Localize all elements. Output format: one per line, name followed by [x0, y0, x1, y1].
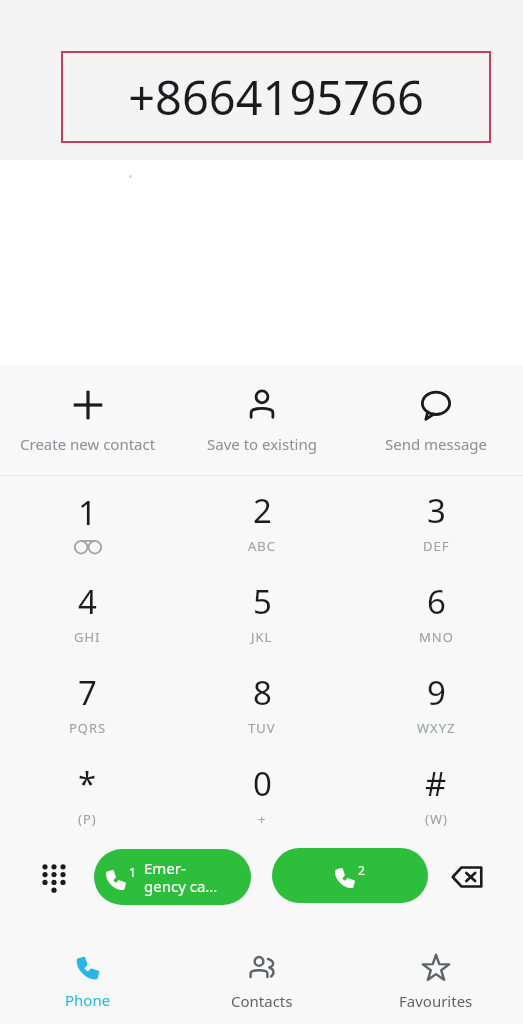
staticText: +: [258, 810, 267, 828]
staticText: Send message: [385, 434, 488, 454]
button[interactable]: 3: [349, 476, 523, 567]
staticText: (W): [425, 810, 448, 828]
button[interactable]: 1: [0, 476, 175, 567]
staticText: ABC: [248, 537, 276, 555]
button[interactable]: Phone: [0, 940, 175, 1024]
staticText: Favourites: [399, 991, 473, 1011]
staticText: 6: [427, 579, 446, 624]
staticText: 3: [427, 488, 446, 533]
staticText: 7: [78, 670, 97, 715]
staticText: MNO: [419, 628, 454, 646]
button[interactable]: 1: [94, 849, 251, 905]
staticText: #: [425, 761, 447, 806]
button[interactable]: Backspace: [441, 851, 493, 903]
button[interactable]: 6: [349, 567, 523, 658]
staticText: 1: [129, 864, 136, 880]
button[interactable]: Call with SIM 2: [272, 848, 428, 903]
button[interactable]: 7: [0, 658, 175, 749]
staticText: 5: [253, 579, 272, 624]
staticText: WXYZ: [417, 719, 456, 737]
staticText: 8: [253, 670, 272, 715]
staticText: 0: [253, 761, 272, 806]
button[interactable]: Save to existing: [175, 365, 349, 476]
staticText: Phone: [65, 990, 111, 1010]
button[interactable]: Show dialpad: [28, 851, 80, 903]
button[interactable]: 0: [175, 749, 349, 840]
button[interactable]: Favourites: [349, 940, 523, 1024]
button[interactable]: Contacts: [175, 940, 349, 1024]
staticText: JKL: [251, 628, 273, 646]
staticText: Create new contact: [20, 434, 156, 454]
staticText: +8664195766: [128, 65, 424, 129]
staticText: 1: [78, 490, 97, 535]
button[interactable]: 2: [175, 476, 349, 567]
staticText: 2: [253, 488, 272, 533]
staticText: 2: [358, 862, 365, 878]
staticText: *: [78, 761, 97, 806]
staticText: 4: [78, 579, 97, 624]
button[interactable]: 5: [175, 567, 349, 658]
staticText: (P): [78, 810, 97, 828]
button[interactable]: Create new contact: [0, 365, 175, 476]
staticText: TUV: [248, 719, 276, 737]
staticText: Save to existing: [207, 434, 317, 454]
staticText: GHI: [74, 628, 101, 646]
staticText: 9: [427, 670, 446, 715]
button[interactable]: *: [0, 749, 175, 840]
button[interactable]: 9: [349, 658, 523, 749]
staticText: DEF: [423, 537, 450, 555]
button[interactable]: +8664195766: [62, 52, 490, 142]
staticText: PQRS: [69, 719, 107, 737]
staticText: Contacts: [231, 991, 293, 1011]
button[interactable]: #: [349, 749, 523, 840]
button[interactable]: 8: [175, 658, 349, 749]
button[interactable]: Send message: [349, 365, 523, 476]
staticText: Emer- gency ca...: [144, 858, 218, 897]
button[interactable]: 4: [0, 567, 175, 658]
